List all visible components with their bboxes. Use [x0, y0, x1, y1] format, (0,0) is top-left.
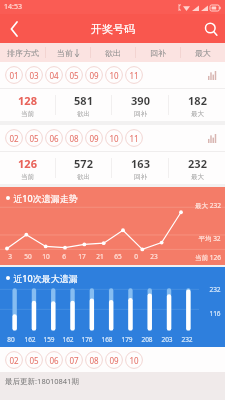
staticText: 09 — [89, 70, 99, 81]
staticText: 14:53 — [4, 2, 22, 12]
staticText: 163 — [131, 156, 150, 171]
staticText: 最后更新:18010841期 — [5, 376, 79, 386]
staticText: 08 — [89, 355, 99, 366]
staticText: 128 — [18, 93, 37, 108]
staticText: 近10次遗漏走势 — [13, 192, 78, 204]
staticText: 02 — [9, 133, 19, 144]
staticText: 最大 — [195, 48, 211, 58]
staticText: 当前 126 — [195, 253, 221, 262]
staticText: 排序方式 — [7, 48, 39, 58]
staticText: 04 — [49, 70, 59, 81]
button[interactable]: 182 — [169, 89, 225, 121]
staticText: 176 — [81, 335, 93, 344]
staticText: 当前 — [57, 48, 73, 58]
button[interactable]: 126 — [0, 152, 55, 184]
staticText: 21 — [96, 252, 104, 261]
button[interactable]: 02 — [0, 125, 225, 151]
staticText: 最大 — [191, 173, 204, 181]
staticText: 欲出 — [105, 48, 121, 58]
button[interactable]: 581 — [56, 89, 111, 121]
staticText: 159 — [43, 335, 55, 344]
button[interactable]: 当前 — [46, 43, 90, 62]
staticText: 65 — [114, 252, 122, 261]
staticText: 11 — [129, 133, 139, 144]
button[interactable]: 232 — [169, 152, 225, 184]
staticText: 0 — [134, 252, 138, 261]
staticText: 17 — [78, 252, 86, 261]
button[interactable]: 02 — [0, 347, 225, 372]
staticText: 208 — [141, 335, 153, 344]
staticText: 01 — [9, 70, 19, 81]
button[interactable]: 回补 — [136, 43, 180, 62]
staticText: 182 — [188, 93, 207, 108]
staticText: 回补 — [134, 173, 147, 181]
staticText: 欲出 — [77, 173, 90, 181]
staticText: 09 — [109, 355, 119, 366]
staticText: 80 — [7, 335, 15, 344]
staticText: 05 — [69, 70, 79, 81]
staticText: 02 — [9, 355, 19, 366]
staticText: 10 — [109, 133, 119, 144]
button[interactable]: 最大 — [181, 43, 225, 62]
staticText: 179 — [121, 335, 133, 344]
staticText: 06 — [49, 355, 59, 366]
staticText: 05 — [29, 133, 39, 144]
staticText: 232 — [188, 156, 207, 171]
staticText: 03 — [29, 70, 39, 81]
staticText: 162 — [24, 335, 36, 344]
staticText: 50 — [24, 252, 32, 261]
button[interactable]: 01 — [0, 62, 225, 88]
staticText: 203 — [161, 335, 173, 344]
staticText: 6 — [62, 252, 66, 261]
staticText: 168 — [101, 335, 113, 344]
button[interactable]: 近10次最大遗漏 — [0, 267, 225, 347]
button[interactable]: Back — [0, 15, 28, 43]
staticText: 05 — [29, 355, 39, 366]
staticText: 最大 232 — [195, 201, 221, 210]
button[interactable]: Trend chart — [204, 130, 220, 146]
staticText: 当前 — [21, 110, 34, 118]
staticText: 162 — [62, 335, 74, 344]
staticText: 最大 — [191, 110, 204, 118]
staticText: 07 — [69, 355, 79, 366]
staticText: 10 — [129, 355, 139, 366]
staticText: 3 — [8, 252, 12, 261]
staticText: 平均 32 — [198, 234, 221, 243]
staticText: 回补 — [150, 48, 166, 58]
staticText: 23 — [150, 252, 158, 261]
staticText: 11 — [129, 70, 139, 81]
button[interactable]: 欲出 — [91, 43, 135, 62]
staticText: 近10次最大遗漏 — [13, 272, 78, 284]
staticText: 欲出 — [77, 110, 90, 118]
button[interactable]: 近10次遗漏走势 — [0, 187, 225, 265]
staticText: 572 — [74, 156, 93, 171]
button[interactable]: 572 — [56, 152, 111, 184]
staticText: 10 — [42, 252, 50, 261]
staticText: 08 — [69, 133, 79, 144]
staticText: 当前 — [21, 173, 34, 181]
staticText: 06 — [49, 133, 59, 144]
staticText: 09 — [89, 133, 99, 144]
staticText: 126 — [18, 156, 37, 171]
button[interactable]: Search — [197, 15, 225, 43]
staticText: 232 — [181, 335, 193, 344]
staticText: 116 — [209, 309, 221, 318]
staticText: 581 — [74, 93, 93, 108]
staticText: 10 — [109, 70, 119, 81]
button[interactable]: Trend chart — [204, 67, 220, 83]
button[interactable]: 163 — [112, 152, 168, 184]
button[interactable]: 排序方式 — [0, 43, 45, 62]
staticText: 390 — [131, 93, 150, 108]
button[interactable]: 128 — [0, 89, 55, 121]
staticText: 232 — [209, 285, 221, 294]
staticText: 开奖号码 — [91, 22, 135, 36]
button[interactable]: 390 — [112, 89, 168, 121]
staticText: 回补 — [134, 110, 147, 118]
